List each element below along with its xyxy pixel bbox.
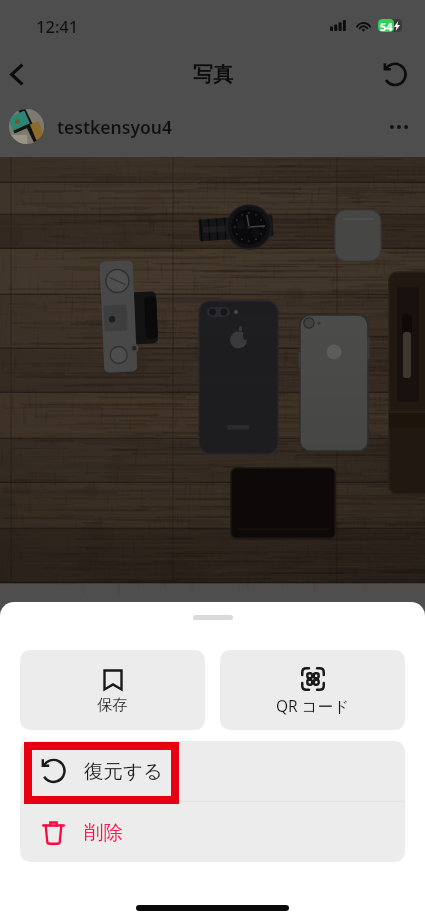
staticText: testkensyou4 xyxy=(57,115,172,139)
button[interactable]: More options xyxy=(373,101,419,152)
button[interactable]: 削除 xyxy=(20,802,405,862)
button[interactable]: 保存 xyxy=(20,650,205,730)
button[interactable]: 復元する xyxy=(20,741,405,801)
staticText: 削除 xyxy=(84,820,123,845)
staticText: 12:41 xyxy=(36,15,79,37)
staticText: 写真 xyxy=(193,62,233,87)
staticText: QR コード xyxy=(276,695,350,716)
staticText: 復元する xyxy=(84,759,163,784)
staticText: 保存 xyxy=(97,695,128,715)
button[interactable]: Back xyxy=(0,48,44,100)
button[interactable]: QR コード xyxy=(220,650,405,730)
staticText: 54 xyxy=(380,19,393,32)
button[interactable]: testkensyou4 xyxy=(0,101,425,152)
button[interactable]: Restore xyxy=(377,48,425,100)
